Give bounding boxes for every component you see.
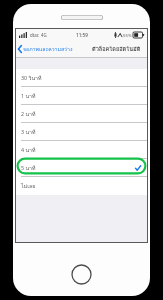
staticText: 4 นาที bbox=[21, 146, 36, 154]
staticText: 30 วินาที bbox=[21, 74, 42, 82]
staticText: ไม่เลย bbox=[21, 182, 36, 190]
staticText: dtac bbox=[30, 32, 39, 38]
staticText: ตัวล็อคโดยอัตโนมัติ bbox=[92, 45, 141, 54]
button[interactable]: Back bbox=[16, 40, 75, 58]
staticText: 3 นาที bbox=[21, 128, 36, 136]
staticText: 5 นาที bbox=[21, 164, 36, 172]
button[interactable]: 30 วินาที bbox=[16, 69, 147, 87]
button[interactable]: 2 นาที bbox=[16, 105, 147, 123]
button[interactable]: 3 นาที bbox=[16, 123, 147, 141]
button[interactable]: Home bbox=[71, 264, 92, 285]
staticText: 4G bbox=[41, 32, 47, 38]
button[interactable]: 4 นาที bbox=[16, 141, 147, 159]
button[interactable]: 5 นาที bbox=[16, 159, 147, 177]
staticText: จอภาพและความสว่าง bbox=[23, 45, 73, 53]
button[interactable]: ไม่เลย bbox=[16, 177, 147, 195]
staticText: 1 นาที bbox=[21, 92, 36, 100]
staticText: 55% bbox=[123, 32, 132, 38]
staticText: 11:59 bbox=[76, 32, 88, 38]
staticText: 2 นาที bbox=[21, 110, 36, 118]
button[interactable]: 1 นาที bbox=[16, 87, 147, 105]
